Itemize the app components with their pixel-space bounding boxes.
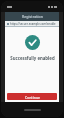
button[interactable]: https://secure.example.com/enable <box>7 21 57 26</box>
staticText: https://secure.example.com/enable <box>10 22 56 26</box>
staticText: Continue <box>25 95 40 99</box>
staticText: Successfully enabled <box>10 55 55 61</box>
other: Success <box>25 35 40 50</box>
staticText: Registration <box>22 14 43 19</box>
button[interactable]: Registration <box>5 12 59 21</box>
button[interactable]: Continue <box>7 93 57 100</box>
